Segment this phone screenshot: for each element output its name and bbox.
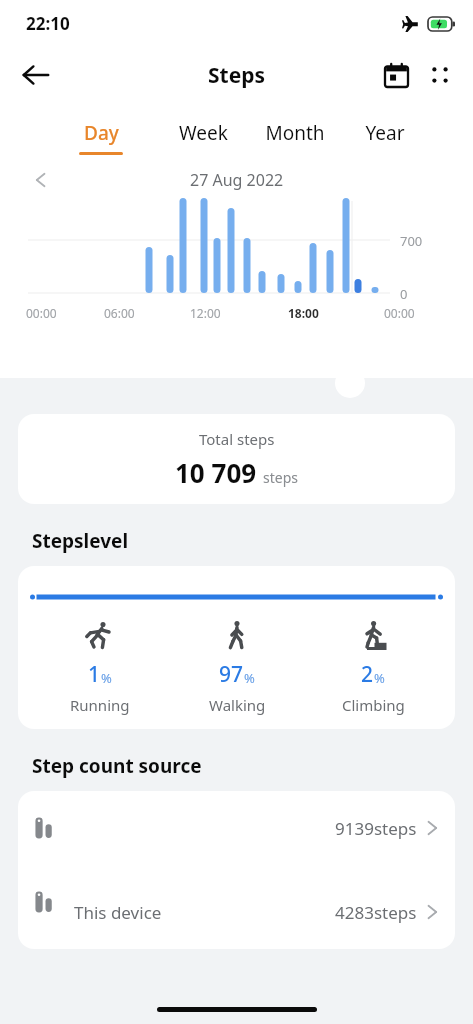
button[interactable]: Calendar [373, 52, 419, 98]
button[interactable]: 1 [45, 620, 155, 715]
staticText: 00:00 [26, 305, 57, 321]
staticText: 22:10 [26, 12, 70, 35]
staticText: Month [265, 120, 325, 146]
button[interactable]: This device [18, 865, 455, 939]
staticText: 27 Aug 2022 [190, 169, 284, 191]
staticText: 1 [88, 660, 101, 689]
staticText: 4283steps [335, 901, 417, 924]
button[interactable]: More options [419, 54, 461, 96]
staticText: Walking [209, 695, 266, 715]
staticText: This device [74, 901, 162, 924]
button[interactable]: Month [249, 120, 341, 152]
staticText: Step count source [32, 753, 202, 779]
button[interactable]: 9139steps [18, 791, 455, 865]
button[interactable]: Previous day [24, 165, 58, 195]
staticText: 18:00 [288, 305, 319, 321]
staticText: steps [263, 468, 298, 487]
staticText: % [374, 669, 385, 687]
button[interactable]: Total steps [18, 414, 455, 504]
staticText: % [101, 669, 112, 687]
button[interactable]: Back [10, 49, 62, 101]
button[interactable]: Year [341, 120, 429, 152]
staticText: 00:00 [384, 305, 415, 321]
button[interactable]: 2 [318, 620, 428, 715]
staticText: 700 [400, 232, 423, 250]
button[interactable]: 97 [182, 620, 292, 715]
staticText: Day [84, 120, 119, 146]
staticText: 0 [400, 285, 408, 303]
staticText: Total steps [199, 429, 275, 449]
staticText: 10 709 [175, 455, 257, 490]
staticText: 97 [219, 660, 244, 689]
button[interactable]: Day [45, 120, 157, 155]
staticText: 12:00 [190, 305, 221, 321]
staticText: Running [70, 695, 130, 715]
staticText: Climbing [342, 695, 405, 715]
staticText: % [244, 669, 255, 687]
staticText: Stepslevel [32, 528, 129, 554]
staticText: 2 [361, 660, 374, 689]
staticText: 9139steps [335, 817, 417, 840]
staticText: 06:00 [104, 305, 135, 321]
button[interactable]: Week [157, 120, 249, 152]
staticText: Steps [208, 61, 266, 90]
staticText: Year [365, 120, 405, 146]
staticText: Week [179, 120, 228, 146]
